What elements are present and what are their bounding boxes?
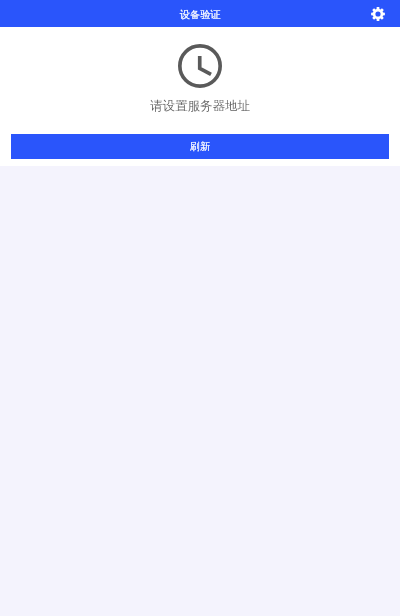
button[interactable]: 刷新 [11,134,389,159]
staticText: 请设置服务器地址 [150,98,250,114]
staticText: 刷新 [190,140,210,153]
staticText: 设备验证 [180,8,221,21]
button[interactable]: Settings [369,5,387,23]
